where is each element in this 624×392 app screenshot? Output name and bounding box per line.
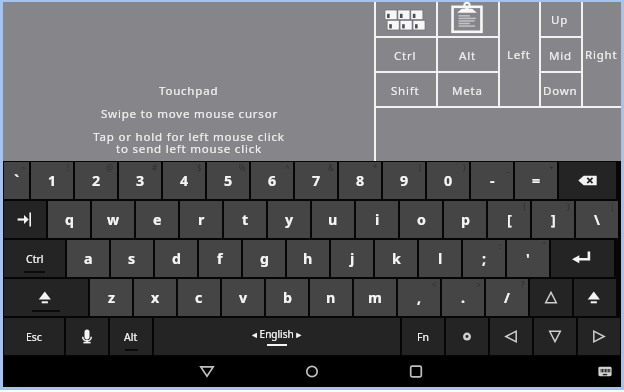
button[interactable]: k — [375, 240, 417, 277]
button[interactable]: h — [287, 240, 329, 277]
staticText: r — [198, 210, 205, 229]
button[interactable]: g — [243, 240, 285, 277]
staticText: Ctrl — [394, 48, 417, 64]
button[interactable]: Mid — [539, 38, 581, 73]
button[interactable]: > — [442, 279, 484, 316]
button[interactable]: t — [224, 201, 266, 238]
staticText: Touchpad — [159, 83, 219, 99]
button[interactable]: p — [444, 201, 486, 238]
button[interactable]: Arrow right — [578, 318, 620, 355]
button[interactable]: Esc — [4, 318, 64, 355]
staticText: # — [152, 162, 158, 173]
button[interactable]: Arrow left — [490, 318, 532, 355]
button[interactable]: Ctrl — [4, 240, 65, 277]
staticText: , — [417, 288, 422, 307]
button[interactable]: q — [48, 201, 90, 238]
staticText: - — [490, 171, 495, 190]
button[interactable]: e — [136, 201, 178, 238]
staticText: Alt — [124, 330, 138, 344]
button[interactable]: Voice input — [66, 318, 108, 355]
button[interactable]: $ — [163, 162, 205, 199]
staticText: 8 — [356, 171, 365, 190]
button[interactable]: w — [92, 201, 134, 238]
button[interactable]: l — [419, 240, 461, 277]
button[interactable]: Alt — [436, 38, 498, 73]
button[interactable]: _ — [471, 162, 513, 199]
button[interactable]: Clipboard — [436, 2, 498, 38]
button[interactable]: Down — [539, 73, 581, 108]
staticText: + — [549, 162, 554, 173]
button[interactable]: Enter — [551, 240, 614, 277]
staticText: ' — [526, 249, 530, 268]
button[interactable]: f — [199, 240, 241, 277]
button[interactable]: # — [119, 162, 161, 199]
button[interactable]: ! — [31, 162, 73, 199]
button[interactable]: Show keyboard — [374, 2, 436, 38]
staticText: t — [242, 210, 249, 229]
button[interactable]: * — [339, 162, 381, 199]
button[interactable]: Settings — [446, 318, 488, 355]
button[interactable]: Ctrl — [374, 38, 436, 73]
button[interactable]: { — [488, 201, 530, 238]
button[interactable]: Home — [290, 356, 334, 387]
button[interactable]: Meta — [436, 73, 498, 108]
button[interactable]: & — [295, 162, 337, 199]
button[interactable]: u — [312, 201, 354, 238]
button[interactable]: s — [111, 240, 153, 277]
staticText: 7 — [312, 171, 321, 190]
button[interactable]: Shift — [374, 73, 436, 108]
button[interactable]: : — [463, 240, 505, 277]
button[interactable]: r — [180, 201, 222, 238]
button[interactable]: Left — [498, 2, 539, 108]
button[interactable]: x — [134, 279, 176, 316]
button[interactable]: Arrow up — [530, 279, 572, 316]
button[interactable]: ~ — [4, 162, 29, 199]
staticText: . — [461, 288, 465, 307]
button[interactable]: z — [90, 279, 132, 316]
button[interactable]: y — [268, 201, 310, 238]
button[interactable]: Recent apps — [394, 356, 438, 387]
button[interactable]: j — [331, 240, 373, 277]
button[interactable]: @ — [75, 162, 117, 199]
button[interactable]: b — [266, 279, 308, 316]
button[interactable]: Arrow down — [534, 318, 576, 355]
button[interactable]: ( — [383, 162, 425, 199]
staticText: g — [260, 249, 269, 268]
button[interactable]: c — [178, 279, 220, 316]
button[interactable]: ? — [486, 279, 528, 316]
button[interactable]: m — [354, 279, 396, 316]
button[interactable]: i — [356, 201, 398, 238]
button[interactable]: Switch keyboard — [583, 356, 624, 387]
button[interactable]: % — [207, 162, 249, 199]
button[interactable]: Fn — [402, 318, 444, 355]
button[interactable]: d — [155, 240, 197, 277]
staticText: | — [610, 201, 615, 212]
button[interactable]: Touchpad — [3, 2, 374, 161]
button[interactable]: Extra pad — [374, 108, 621, 161]
staticText: Down — [543, 83, 578, 99]
button[interactable]: Alt — [110, 318, 152, 355]
button[interactable]: n — [310, 279, 352, 316]
button[interactable]: v — [222, 279, 264, 316]
button[interactable]: + — [515, 162, 557, 199]
button[interactable]: Backspace — [559, 162, 616, 199]
button[interactable]: | — [576, 201, 618, 238]
staticText: o — [417, 210, 426, 229]
button[interactable]: " — [507, 240, 549, 277]
button[interactable]: Right — [581, 2, 621, 108]
button[interactable]: Shift — [4, 279, 88, 316]
button[interactable]: Space, English — [154, 318, 400, 355]
button[interactable]: Back — [185, 356, 229, 387]
button[interactable]: a — [67, 240, 109, 277]
button[interactable]: ^ — [251, 162, 293, 199]
button[interactable]: Up — [539, 2, 581, 38]
button[interactable]: Shift — [574, 279, 616, 316]
button[interactable]: < — [398, 279, 440, 316]
staticText: h — [303, 249, 313, 268]
button[interactable]: Tab — [4, 201, 46, 238]
button[interactable]: o — [400, 201, 442, 238]
button[interactable]: ) — [427, 162, 469, 199]
staticText: e — [153, 210, 162, 229]
button[interactable]: } — [532, 201, 574, 238]
staticText: ` — [14, 171, 20, 190]
